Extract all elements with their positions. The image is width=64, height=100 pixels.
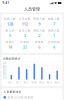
staticText: 2 [38,33,40,38]
staticText: 离职人数 [33,29,45,32]
button[interactable]: 待考核 [17,40,32,50]
staticText: 转正人数 [19,29,31,32]
staticText: 128 [7,21,13,26]
staticText: 周四 [31,81,37,84]
staticText: 新入职 [6,29,15,32]
staticText: 3 [24,33,26,38]
button[interactable]: 调岗人数 [47,29,61,38]
staticText: 培训中 [6,40,15,44]
button[interactable]: 今日出勤 [17,17,32,26]
staticText: 张伟 已入职 研发部 [7,96,33,99]
staticText: 出勤趋势统计 [3,57,21,60]
button[interactable]: 张伟 已入职 研发部 [3,96,61,99]
staticText: 1 [53,33,55,38]
staticText: 周六 [46,81,52,84]
staticText: 周三 [24,81,30,84]
button[interactable]: 缺勤人数 [47,17,61,26]
button[interactable]: 合同到期 [47,40,61,50]
staticText: 4 [53,44,55,50]
staticText: 0 [5,76,7,79]
staticText: 请假人数 [33,17,45,21]
staticText: 6 [38,44,40,50]
staticText: 周一 [8,81,14,84]
staticText: 待考核 [20,40,29,44]
button[interactable]: 培训中 [3,40,17,50]
button[interactable]: 转正人数 [17,29,32,38]
staticText: 5 [9,33,11,38]
staticText: 合同到期 [48,40,60,44]
staticText: 人员管理 [24,7,40,12]
staticText: 人员最新动态 [3,90,21,93]
staticText: 100 [3,72,7,76]
button[interactable]: 新入职 [3,29,17,38]
staticText: 112 [22,21,28,26]
staticText: 200 [3,69,7,72]
button[interactable]: 请假人数 [32,17,47,26]
button[interactable]: 离职人数 [32,29,47,38]
staticText: 调岗人数 [48,29,60,32]
staticText: 300 [3,65,7,69]
staticText: 周日 [54,81,60,84]
staticText: 22 [23,44,27,50]
staticText: 今日出勤 [19,17,31,21]
staticText: 400 [3,61,7,65]
staticText: 周二 [16,81,22,84]
staticText: 14 [8,44,12,50]
staticText: 缺勤人数 [48,17,60,21]
button[interactable]: 待审批 [32,40,47,50]
staticText: 周五 [39,81,45,84]
staticText: 在岗人数 [4,17,16,21]
staticText: 9 [38,21,40,26]
button[interactable]: 在岗人数 [3,17,17,26]
staticText: 7 [53,21,55,26]
staticText: 待审批 [35,40,44,44]
staticText: 9:41 [3,1,10,5]
